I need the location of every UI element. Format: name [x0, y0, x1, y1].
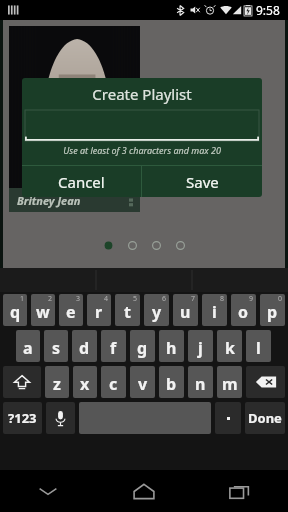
button[interactable]: Recent apps — [192, 470, 288, 512]
button[interactable]: f — [101, 330, 126, 362]
button[interactable]: Cancel — [22, 166, 141, 197]
button[interactable] — [152, 241, 161, 250]
staticText: Done — [248, 409, 282, 427]
button[interactable]: v — [130, 366, 155, 398]
button[interactable]: d — [72, 330, 97, 362]
button[interactable]: x — [73, 366, 97, 398]
button[interactable]: o — [231, 294, 256, 326]
button[interactable]: u — [173, 294, 198, 326]
button[interactable]: Home — [96, 470, 192, 512]
button[interactable]: s — [44, 330, 68, 362]
button[interactable]: Hide keyboard — [0, 470, 96, 512]
staticText: y — [152, 301, 162, 323]
staticText: k — [225, 337, 235, 359]
button[interactable]: c — [101, 366, 126, 398]
staticText: 2 — [48, 294, 53, 304]
staticText: ?123 — [8, 409, 37, 427]
staticText: 9:58 — [256, 2, 280, 18]
staticText: o — [238, 301, 249, 323]
button[interactable]: Voice input — [46, 402, 75, 434]
button[interactable]: h — [159, 330, 184, 362]
button[interactable]: e — [59, 294, 83, 326]
button[interactable]: More options — [129, 193, 133, 207]
staticText: Britney Jean — [17, 193, 81, 208]
staticText: j — [198, 337, 203, 359]
staticText: c — [109, 373, 118, 395]
staticText: 0 — [278, 294, 283, 304]
staticText: g — [137, 337, 148, 359]
staticText: t — [124, 301, 131, 323]
staticText: 7 — [191, 294, 196, 304]
staticText: h — [166, 337, 177, 359]
staticText: w — [36, 301, 50, 323]
button[interactable]: g — [130, 330, 155, 362]
button[interactable]: p — [260, 294, 285, 326]
button[interactable]: y — [144, 294, 169, 326]
staticText: 9 — [249, 294, 254, 304]
staticText: 4 — [104, 294, 109, 304]
staticText: l — [256, 337, 261, 359]
button[interactable]: q — [3, 294, 27, 326]
button[interactable]: Save — [142, 166, 262, 197]
button[interactable] — [176, 241, 185, 250]
staticText: q — [10, 301, 21, 323]
button[interactable]: n — [188, 366, 213, 398]
staticText: 3 — [76, 294, 81, 304]
button[interactable]: z — [45, 366, 69, 398]
staticText: Create Playlist — [92, 84, 192, 104]
button[interactable]: Done — [245, 402, 285, 434]
staticText: 6 — [162, 294, 167, 304]
button[interactable] — [25, 110, 259, 141]
staticText: e — [66, 301, 76, 323]
button[interactable]: a — [16, 330, 40, 362]
staticText: m — [222, 373, 238, 395]
staticText: Use at least of 3 characters and max 20 — [63, 144, 221, 156]
button[interactable]: ?123 — [3, 402, 42, 434]
button[interactable] — [128, 241, 137, 250]
staticText: 8 — [220, 294, 225, 304]
staticText: p — [267, 301, 278, 323]
staticText: x — [80, 373, 90, 395]
button[interactable]: b — [159, 366, 184, 398]
button[interactable]: Backspace — [246, 366, 285, 398]
staticText: a — [23, 337, 33, 359]
button[interactable] — [104, 241, 113, 250]
button[interactable]: Period — [215, 402, 241, 434]
staticText: n — [195, 373, 206, 395]
staticText: f — [110, 337, 117, 359]
button[interactable]: t — [115, 294, 140, 326]
button[interactable]: m — [217, 366, 242, 398]
button[interactable]: l — [246, 330, 271, 362]
staticText: b — [166, 373, 177, 395]
staticText: Save — [186, 172, 219, 192]
staticText: z — [53, 373, 61, 395]
staticText: 1 — [20, 294, 25, 304]
staticText: r — [95, 301, 103, 323]
button[interactable]: w — [31, 294, 55, 326]
button[interactable]: k — [217, 330, 242, 362]
staticText: u — [180, 301, 191, 323]
button[interactable]: r — [87, 294, 111, 326]
staticText: v — [138, 373, 148, 395]
staticText: d — [79, 337, 90, 359]
staticText: Cancel — [58, 172, 105, 192]
button[interactable]: j — [188, 330, 213, 362]
button[interactable]: i — [202, 294, 227, 326]
staticText: s — [52, 337, 61, 359]
staticText: 5 — [133, 294, 138, 304]
button[interactable]: Britney Jean — [9, 26, 140, 212]
staticText: i — [212, 301, 217, 323]
button[interactable]: Shift — [3, 366, 41, 398]
